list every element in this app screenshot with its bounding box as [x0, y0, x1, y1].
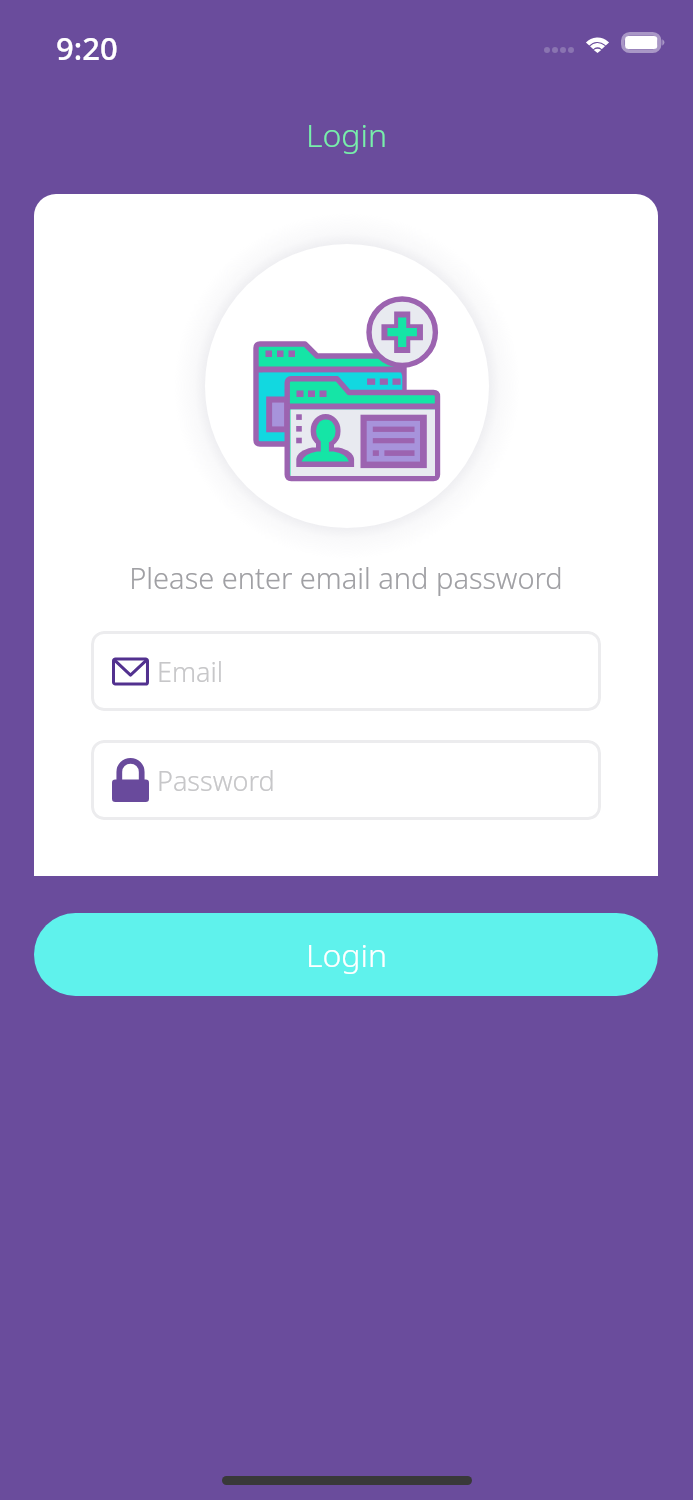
- button[interactable]: Email: [91, 631, 601, 711]
- staticText: Email: [157, 653, 224, 690]
- staticText: 9:20: [56, 27, 118, 69]
- button[interactable]: Password: [91, 740, 601, 820]
- staticText: Login: [306, 933, 387, 977]
- staticText: Login: [0, 113, 693, 157]
- button[interactable]: Login: [34, 913, 658, 996]
- staticText: Password: [157, 762, 275, 799]
- staticText: Please enter email and password: [34, 558, 658, 597]
